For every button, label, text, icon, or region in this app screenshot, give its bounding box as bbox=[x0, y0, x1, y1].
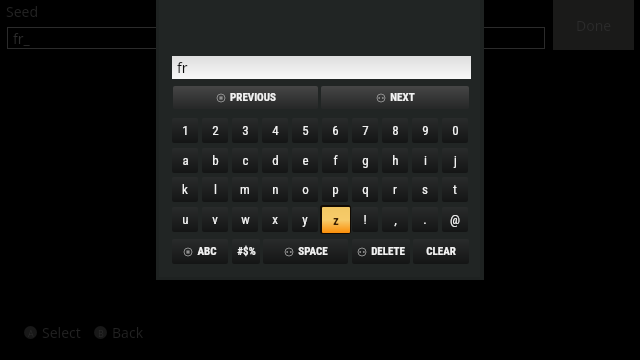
staticText: SPACE bbox=[298, 245, 328, 258]
button[interactable]: o bbox=[292, 177, 318, 202]
button[interactable]: s bbox=[412, 177, 438, 202]
button[interactable]: 3 bbox=[232, 118, 258, 143]
staticText: q bbox=[362, 182, 369, 197]
staticText: B bbox=[98, 327, 104, 339]
staticText: m bbox=[240, 182, 250, 197]
button[interactable]: q bbox=[352, 177, 378, 202]
staticText: 9 bbox=[422, 123, 429, 138]
button[interactable]: 1 bbox=[172, 118, 198, 143]
staticText: 0 bbox=[452, 123, 459, 138]
staticText: 3 bbox=[242, 123, 249, 138]
staticText: NEXT bbox=[390, 91, 415, 104]
button[interactable]: f bbox=[322, 148, 348, 173]
button[interactable]: fr bbox=[172, 56, 471, 79]
button[interactable]: 0 bbox=[442, 118, 468, 143]
staticText: 4 bbox=[272, 123, 279, 138]
staticText: o bbox=[302, 182, 309, 197]
button[interactable]: i bbox=[412, 148, 438, 173]
button[interactable]: u bbox=[172, 207, 198, 232]
button[interactable]: 7 bbox=[352, 118, 378, 143]
button[interactable]: @ bbox=[442, 207, 468, 232]
button[interactable]: c bbox=[232, 148, 258, 173]
button[interactable]: k bbox=[172, 177, 198, 202]
staticText: . bbox=[423, 212, 427, 227]
staticText: x bbox=[272, 212, 278, 227]
staticText: ! bbox=[363, 212, 367, 227]
staticText: Done bbox=[576, 16, 612, 35]
button[interactable]: e bbox=[292, 148, 318, 173]
button[interactable]: CLEAR bbox=[413, 239, 469, 264]
staticText: fr_ bbox=[13, 29, 30, 48]
staticText: 6 bbox=[332, 123, 339, 138]
staticText: , bbox=[394, 212, 397, 227]
staticText: #$% bbox=[237, 245, 256, 258]
staticText: ABC bbox=[197, 245, 217, 258]
staticText: Select bbox=[42, 323, 81, 342]
staticText: A bbox=[28, 327, 34, 339]
staticText: j bbox=[454, 153, 457, 168]
staticText: 5 bbox=[302, 123, 309, 138]
button[interactable]: #$% bbox=[232, 239, 260, 264]
staticText: 1 bbox=[182, 123, 189, 138]
staticText: l bbox=[214, 182, 217, 197]
button[interactable]: j bbox=[442, 148, 468, 173]
button[interactable]: , bbox=[382, 207, 408, 232]
button[interactable]: PREVIOUS bbox=[173, 86, 318, 109]
button[interactable]: b bbox=[202, 148, 228, 173]
staticText: PREVIOUS bbox=[230, 91, 276, 104]
button[interactable]: SPACE bbox=[263, 239, 348, 264]
staticText: p bbox=[332, 182, 339, 197]
button[interactable]: h bbox=[382, 148, 408, 173]
staticText: CLEAR bbox=[426, 245, 456, 258]
staticText: s bbox=[422, 182, 428, 197]
button[interactable]: . bbox=[412, 207, 438, 232]
button[interactable]: t bbox=[442, 177, 468, 202]
button[interactable]: ABC bbox=[172, 239, 228, 264]
staticText: w bbox=[241, 212, 250, 227]
staticText: a bbox=[182, 153, 189, 168]
staticText: 8 bbox=[392, 123, 399, 138]
staticText: i bbox=[424, 153, 427, 168]
button[interactable]: x bbox=[262, 207, 288, 232]
staticText: h bbox=[392, 153, 399, 168]
button[interactable]: w bbox=[232, 207, 258, 232]
button[interactable]: 8 bbox=[382, 118, 408, 143]
button[interactable]: ! bbox=[352, 207, 378, 232]
button[interactable]: 6 bbox=[322, 118, 348, 143]
staticText: DELETE bbox=[371, 245, 405, 258]
button[interactable]: l bbox=[202, 177, 228, 202]
staticText: 7 bbox=[362, 123, 369, 138]
button[interactable]: m bbox=[232, 177, 258, 202]
button[interactable]: d bbox=[262, 148, 288, 173]
staticText: fr bbox=[177, 58, 188, 77]
staticText: d bbox=[272, 153, 279, 168]
button[interactable]: a bbox=[172, 148, 198, 173]
staticText: t bbox=[453, 182, 457, 197]
staticText: 2 bbox=[212, 123, 219, 138]
staticText: u bbox=[182, 212, 189, 227]
button[interactable]: n bbox=[262, 177, 288, 202]
staticText: Seed bbox=[6, 2, 39, 21]
staticText: b bbox=[212, 153, 219, 168]
button[interactable]: v bbox=[202, 207, 228, 232]
button[interactable]: 4 bbox=[262, 118, 288, 143]
button[interactable]: 9 bbox=[412, 118, 438, 143]
staticText: Back bbox=[112, 323, 144, 342]
button[interactable]: g bbox=[352, 148, 378, 173]
staticText: z bbox=[333, 213, 339, 228]
button[interactable]: 5 bbox=[292, 118, 318, 143]
button[interactable]: y bbox=[292, 207, 318, 232]
button[interactable]: DELETE bbox=[352, 239, 410, 264]
staticText: n bbox=[272, 182, 279, 197]
button[interactable]: r bbox=[382, 177, 408, 202]
button[interactable]: p bbox=[322, 177, 348, 202]
staticText: c bbox=[242, 153, 249, 168]
button[interactable]: NEXT bbox=[321, 86, 469, 109]
button[interactable]: 2 bbox=[202, 118, 228, 143]
staticText: f bbox=[333, 153, 338, 168]
staticText: y bbox=[302, 212, 308, 227]
button[interactable]: fr_ bbox=[7, 27, 545, 49]
button[interactable]: z bbox=[320, 205, 351, 234]
staticText: k bbox=[182, 182, 188, 197]
